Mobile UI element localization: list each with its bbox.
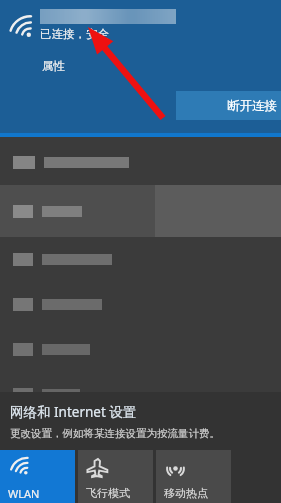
button[interactable]: WLAN — [0, 450, 75, 503]
button[interactable]: 属性 — [40, 57, 67, 75]
button[interactable] — [0, 327, 281, 372]
staticText: 更改设置，例如将某连接设置为按流量计费。 — [10, 427, 220, 440]
button[interactable] — [0, 282, 281, 327]
staticText: 飞行模式 — [86, 486, 130, 500]
staticText: 已连接，安全 — [40, 27, 109, 41]
staticText: WLAN — [8, 486, 40, 501]
other: Wi-Fi connected — [8, 16, 34, 40]
staticText: 移动热点 — [164, 486, 208, 500]
button[interactable] — [0, 140, 281, 185]
staticText: 属性 — [42, 59, 65, 73]
button[interactable]: 飞行模式 — [78, 450, 153, 503]
button[interactable]: 移动热点 — [156, 450, 231, 503]
button[interactable]: 断开连接 — [176, 91, 281, 120]
button[interactable] — [0, 372, 281, 417]
staticText: 断开连接 — [227, 98, 277, 114]
button[interactable] — [0, 237, 281, 282]
button[interactable]: 网络和 Internet 设置 — [0, 402, 143, 422]
button[interactable] — [0, 185, 281, 237]
staticText: 网络和 Internet 设置 — [10, 403, 137, 421]
